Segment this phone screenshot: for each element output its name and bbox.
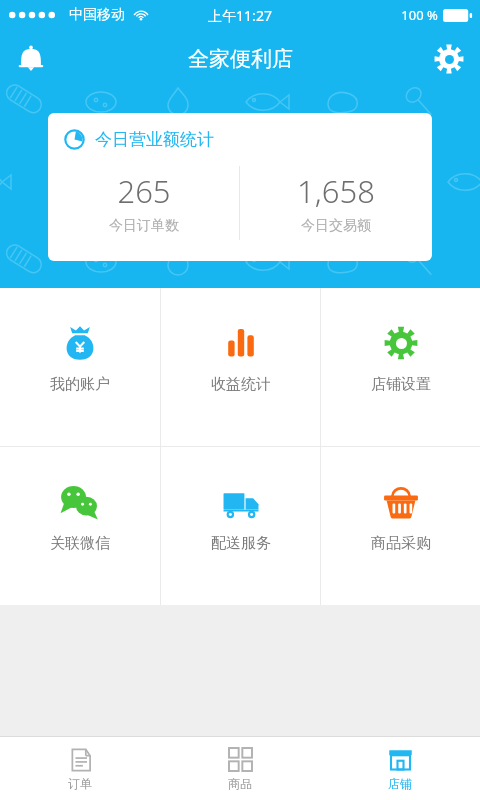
staticText: 我的账户 (50, 375, 110, 394)
staticText: 1,658 (297, 170, 375, 212)
button[interactable]: 店铺设置 (321, 288, 480, 446)
button[interactable]: 收益统计 (161, 288, 320, 446)
staticText: 关联微信 (50, 534, 110, 553)
staticText: 今日订单数 (109, 217, 179, 235)
staticText: 上午11:27 (208, 6, 272, 25)
staticText: 店铺设置 (371, 375, 431, 394)
button[interactable]: 配送服务 (161, 447, 320, 605)
button[interactable]: 今日营业额统计 (48, 113, 432, 261)
staticText: 今日交易额 (301, 217, 371, 235)
staticText: 全家便利店 (188, 46, 293, 72)
button[interactable]: 我的账户 (0, 288, 160, 446)
staticText: 265 (117, 170, 171, 212)
button[interactable]: Settings (422, 32, 476, 86)
button[interactable]: 关联微信 (0, 447, 160, 605)
staticText: 店铺 (388, 776, 412, 791)
staticText: 订单 (68, 776, 92, 791)
button[interactable]: 店铺 (320, 737, 480, 800)
button[interactable]: 订单 (0, 737, 160, 800)
staticText: 商品采购 (371, 534, 431, 553)
staticText: 今日营业额统计 (95, 129, 214, 150)
staticText: 收益统计 (211, 375, 271, 394)
staticText: 中国移动 (69, 6, 125, 24)
button[interactable]: 商品 (160, 737, 320, 800)
staticText: 100 % (401, 6, 438, 24)
staticText: 商品 (228, 776, 252, 791)
button[interactable]: Notifications (4, 32, 58, 86)
button[interactable]: 商品采购 (321, 447, 480, 605)
staticText: 配送服务 (211, 534, 271, 553)
